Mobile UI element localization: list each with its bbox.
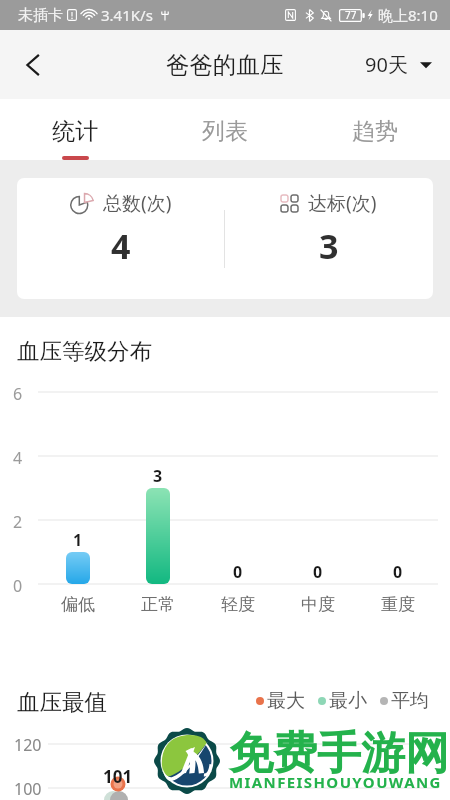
staticText: 列表 — [202, 117, 248, 146]
staticText: 77 — [345, 8, 357, 22]
staticText: 血压最值 — [17, 688, 107, 716]
staticText: 重度 — [381, 594, 415, 615]
button[interactable]: 90天 — [359, 41, 438, 88]
staticText: 总数(次) — [103, 190, 172, 216]
staticText: 趋势 — [352, 117, 398, 146]
staticText: 0 — [393, 561, 403, 583]
staticText: 120 — [14, 734, 42, 756]
staticText: 免费手游网 — [229, 726, 449, 781]
staticText: 4 — [111, 223, 131, 269]
button[interactable]: 列表 — [150, 99, 300, 160]
button[interactable]: 最小 — [318, 689, 367, 713]
staticText: 90天 — [365, 51, 408, 78]
staticText: 血压等级分布 — [17, 337, 152, 365]
staticText: 101 — [103, 765, 133, 788]
staticText: 1 — [73, 529, 83, 551]
staticText: 最大 — [267, 689, 305, 713]
staticText: 0 — [13, 575, 23, 597]
staticText: 6 — [13, 383, 23, 405]
staticText: 偏低 — [61, 594, 95, 615]
staticText: 0 — [233, 561, 243, 583]
staticText: 100 — [14, 778, 42, 800]
button[interactable]: 达标(次) — [225, 178, 433, 299]
staticText: 0 — [313, 561, 323, 583]
staticText: MIANFEISHOUYOUWANG — [229, 772, 442, 792]
staticText: 晚上8:10 — [378, 5, 438, 25]
staticText: 正常 — [141, 594, 175, 615]
staticText: 3 — [319, 223, 339, 269]
staticText: 统计 — [52, 117, 98, 146]
staticText: 达标(次) — [308, 190, 377, 216]
staticText: 未插卡 — [18, 6, 63, 25]
staticText: 4 — [13, 447, 23, 469]
button[interactable]: 趋势 — [300, 99, 450, 160]
button[interactable]: Back — [8, 40, 58, 90]
button[interactable]: 最大 — [256, 689, 305, 713]
staticText: 3.41K/s — [101, 5, 153, 25]
staticText: 中度 — [301, 594, 335, 615]
staticText: 爸爸的血压 — [166, 50, 284, 80]
button[interactable]: 平均 — [380, 689, 429, 713]
staticText: 平均 — [391, 689, 429, 713]
button[interactable]: 统计 — [0, 99, 150, 160]
staticText: 2 — [13, 511, 23, 533]
button[interactable]: 总数(次) — [17, 178, 224, 299]
staticText: 轻度 — [221, 594, 255, 615]
staticText: 3 — [153, 465, 163, 487]
staticText: 最小 — [329, 689, 367, 713]
